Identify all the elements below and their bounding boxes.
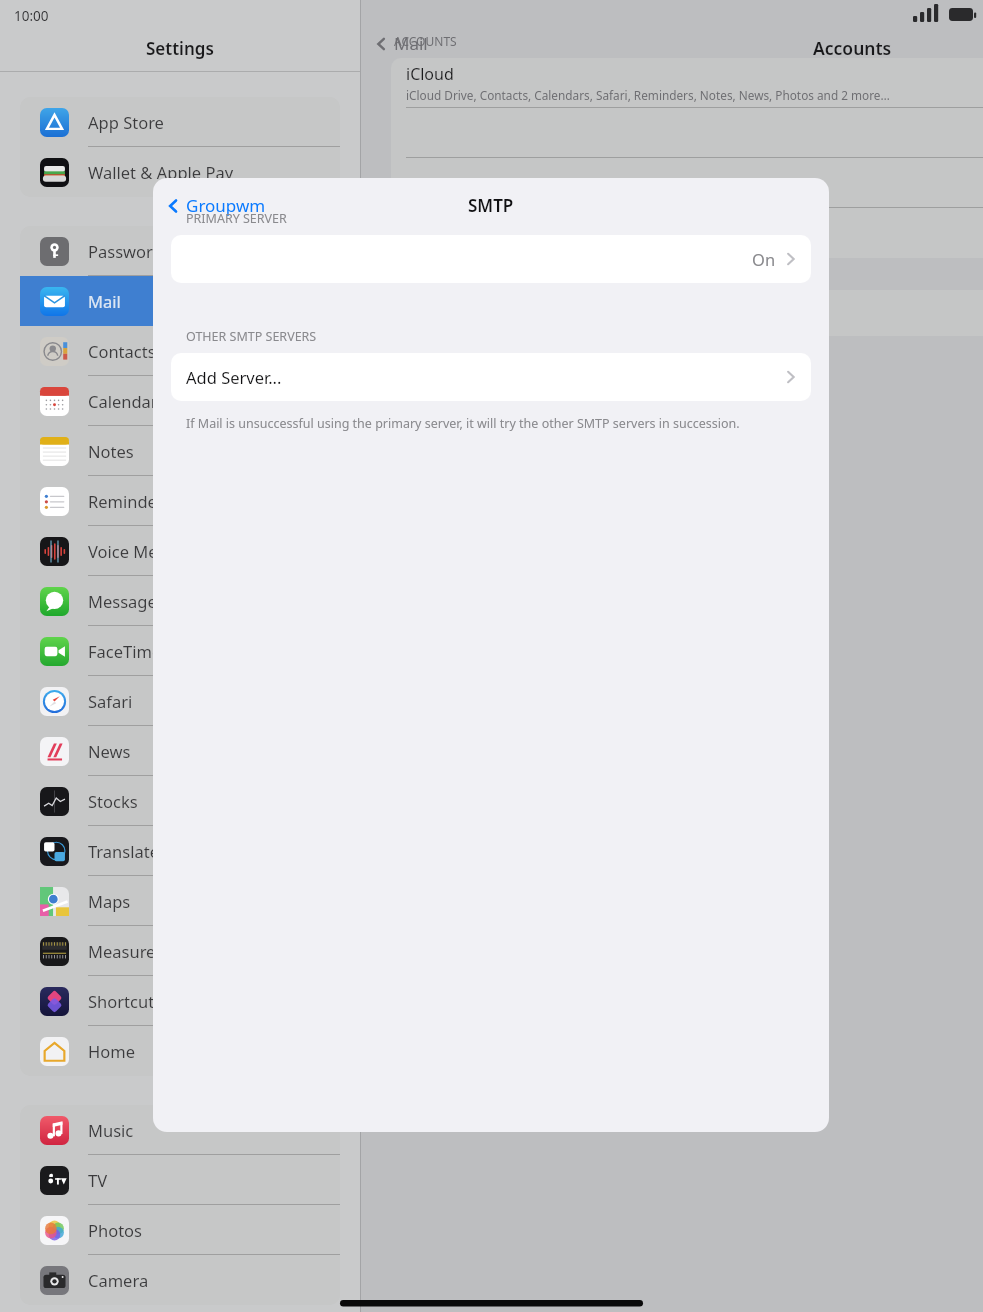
button[interactable]: Stocks [20, 776, 340, 826]
button[interactable]: Mail [20, 276, 340, 326]
staticText: Maps [88, 890, 131, 912]
button[interactable]: Notes [20, 426, 340, 476]
staticText: PRIMARY SERVER [186, 210, 287, 227]
staticText: Translate [88, 840, 159, 862]
button[interactable]: Translate [20, 826, 340, 876]
button[interactable] [391, 108, 983, 158]
staticText: Safari [88, 690, 133, 712]
button[interactable]: Reminders [20, 476, 340, 526]
staticText: Settings [146, 37, 214, 60]
staticText: TV [88, 1169, 108, 1191]
button[interactable]: Mail [373, 32, 428, 55]
staticText: Passwords [88, 240, 171, 262]
button[interactable]: Wallet & Apple Pay [20, 147, 340, 197]
staticText: Stocks [88, 790, 138, 812]
button[interactable]: App Store [20, 97, 340, 147]
button[interactable]: Contacts [20, 326, 340, 376]
staticText: Mail [88, 290, 121, 312]
staticText: Measure [88, 940, 156, 962]
staticText: Contacts [88, 340, 156, 362]
button[interactable]: Photos [20, 1205, 340, 1255]
staticText: Voice Memos [88, 540, 191, 562]
staticText: Music [88, 1119, 134, 1141]
button[interactable]: Maps [20, 876, 340, 926]
button[interactable] [391, 158, 983, 208]
button[interactable]: Measure [20, 926, 340, 976]
staticText: Notes [88, 440, 134, 462]
button[interactable]: On [171, 235, 811, 283]
staticText: App Store [88, 111, 164, 133]
staticText: iCloud [406, 63, 454, 85]
staticText: Home [88, 1040, 135, 1062]
staticText: Camera [88, 1269, 149, 1291]
staticText: Calendar [88, 390, 158, 412]
button[interactable]: Passwords [20, 226, 340, 276]
button[interactable]: Messages [20, 576, 340, 626]
button[interactable]: Groupwm [165, 194, 266, 217]
button[interactable]: Safari [20, 676, 340, 726]
button[interactable]: Add Server... [171, 353, 811, 401]
button[interactable]: FaceTime [20, 626, 340, 676]
staticText: 10:00 [14, 7, 49, 25]
staticText: OTHER SMTP SERVERS [186, 328, 317, 345]
staticText: Reminders [88, 490, 172, 512]
staticText: Accounts [813, 36, 892, 60]
staticText: Wallet & Apple Pay [88, 161, 234, 183]
staticText: News [88, 740, 131, 762]
staticText: On [752, 248, 776, 270]
staticText: SMTP [468, 194, 514, 217]
button[interactable]: iCloud [391, 58, 983, 108]
staticText: If Mail is unsuccessful using the primar… [186, 415, 740, 432]
staticText: Mail [394, 32, 428, 55]
button[interactable]: Shortcuts [20, 976, 340, 1026]
button[interactable]: Home [20, 1026, 340, 1076]
button[interactable]: Automatically [391, 290, 983, 336]
button[interactable]: News [20, 726, 340, 776]
button[interactable] [391, 208, 983, 258]
button[interactable]: TV [20, 1155, 340, 1205]
staticText: Groupwm [186, 194, 266, 217]
button[interactable]: Voice Memos [20, 526, 340, 576]
staticText: Shortcuts [88, 990, 162, 1012]
staticText: iCloud Drive, Contacts, Calendars, Safar… [406, 87, 890, 103]
button[interactable]: Calendar [20, 376, 340, 426]
button[interactable]: Music [20, 1105, 340, 1155]
staticText: ACCOUNTS [394, 33, 457, 49]
staticText: FaceTime [88, 640, 162, 662]
staticText: Add Server... [186, 366, 282, 388]
staticText: Messages [88, 590, 165, 612]
staticText: Photos [88, 1219, 143, 1241]
button[interactable]: Camera [20, 1255, 340, 1305]
